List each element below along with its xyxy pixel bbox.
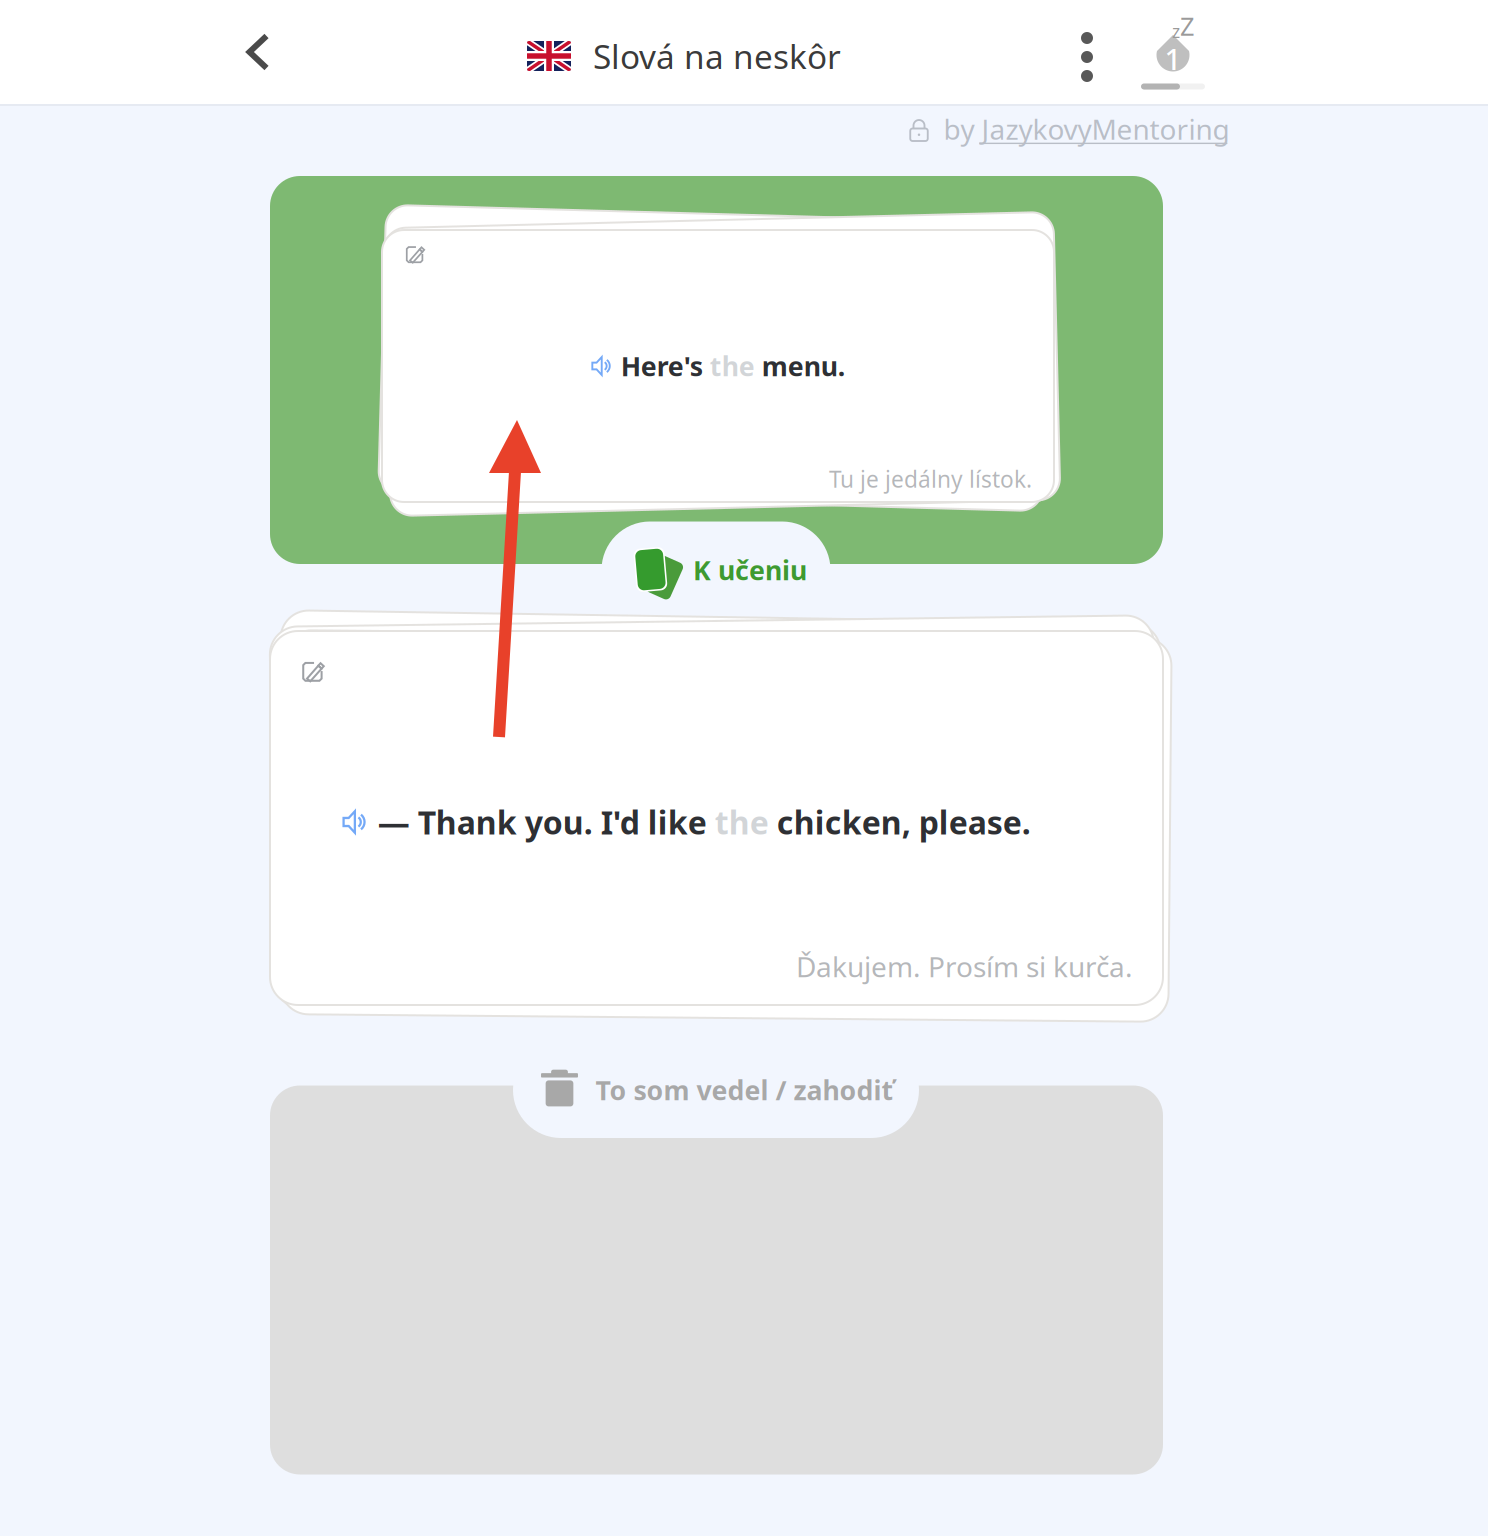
button[interactable]: To som vedel / zahodiť bbox=[513, 1042, 919, 1138]
staticText: z bbox=[1172, 20, 1180, 43]
button[interactable]: JazykovyMentoring bbox=[981, 110, 1229, 148]
button[interactable]: Back bbox=[210, 0, 306, 104]
staticText: the bbox=[715, 801, 777, 843]
staticText: K učeniu bbox=[693, 552, 807, 588]
staticText: Z bbox=[1180, 9, 1194, 43]
staticText: To som vedel / zahodiť bbox=[595, 1072, 893, 1108]
button[interactable]: K učeniu bbox=[601, 521, 830, 618]
button[interactable]: Edit card bbox=[404, 242, 427, 265]
staticText: — Thank you. I'd like bbox=[378, 801, 715, 843]
button[interactable]: Play audio bbox=[591, 355, 614, 377]
staticText: chicken, please. bbox=[777, 801, 1031, 843]
staticText: by bbox=[943, 110, 981, 148]
button[interactable]: Cards due bbox=[1130, 2, 1216, 106]
staticText: menu. bbox=[762, 348, 845, 384]
button[interactable]: More options bbox=[1048, 5, 1126, 109]
staticText: JazykovyMentoring bbox=[981, 110, 1229, 148]
staticText: 1 bbox=[1164, 39, 1181, 78]
staticText: Ďakujem. Prosím si kurča. bbox=[796, 948, 1133, 985]
staticText: Here's bbox=[621, 348, 710, 384]
button[interactable]: Edit card bbox=[300, 657, 327, 684]
button[interactable]: Play audio bbox=[342, 809, 369, 835]
staticText: Tu je jedálny lístok. bbox=[829, 464, 1032, 494]
staticText: Slová na neskôr bbox=[593, 34, 841, 78]
staticText: the bbox=[710, 348, 762, 384]
